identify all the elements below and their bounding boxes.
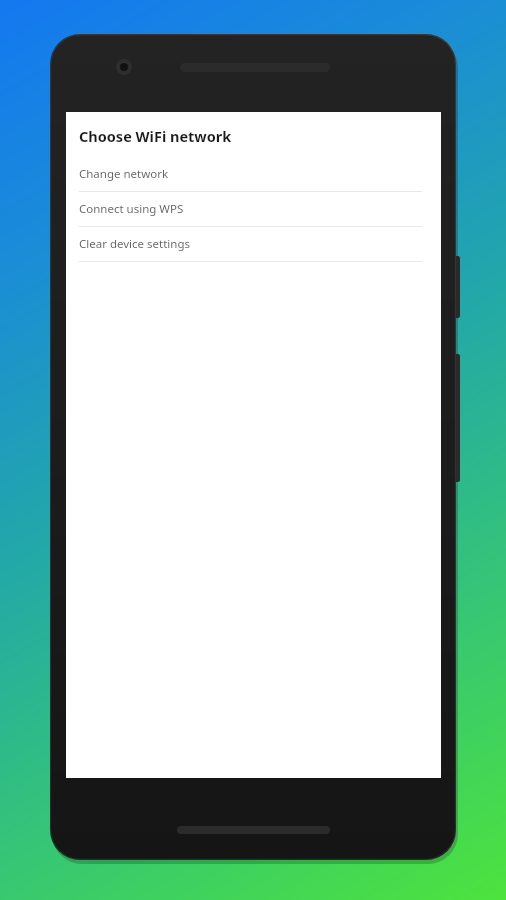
staticText: Choose WiFi network bbox=[79, 126, 232, 146]
button[interactable]: Connect using WPS bbox=[79, 192, 422, 227]
staticText: Change network bbox=[79, 166, 169, 182]
button[interactable]: Change network bbox=[79, 157, 422, 192]
staticText: Connect using WPS bbox=[79, 201, 184, 217]
staticText: Clear device settings bbox=[79, 236, 190, 252]
button[interactable]: Clear device settings bbox=[79, 227, 422, 262]
